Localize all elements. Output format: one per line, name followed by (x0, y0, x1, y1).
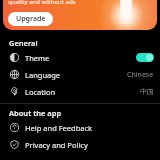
staticText: 中国 (140, 87, 154, 96)
button[interactable]: quality and without ads (3, 0, 157, 30)
button[interactable]: Language (0, 66, 160, 83)
staticText: Theme (25, 53, 50, 63)
button[interactable]: Location (0, 83, 160, 100)
staticText: Privacy and Policy (25, 140, 88, 150)
staticText: Language (25, 70, 61, 80)
staticText: quality and without ads (8, 0, 76, 6)
staticText: Location (25, 87, 56, 97)
staticText: General (9, 38, 38, 48)
staticText: About the app (9, 108, 62, 118)
button[interactable]: Theme (0, 49, 160, 66)
button[interactable]: Privacy and Policy (0, 136, 160, 153)
button[interactable]: Upgrade (8, 12, 53, 26)
button[interactable]: Theme toggle, on (136, 53, 154, 62)
staticText: Upgrade (16, 14, 46, 24)
button[interactable]: Help and Feedback (0, 119, 160, 136)
staticText: Chinese (127, 70, 154, 80)
staticText: Help and Feedback (25, 123, 93, 133)
